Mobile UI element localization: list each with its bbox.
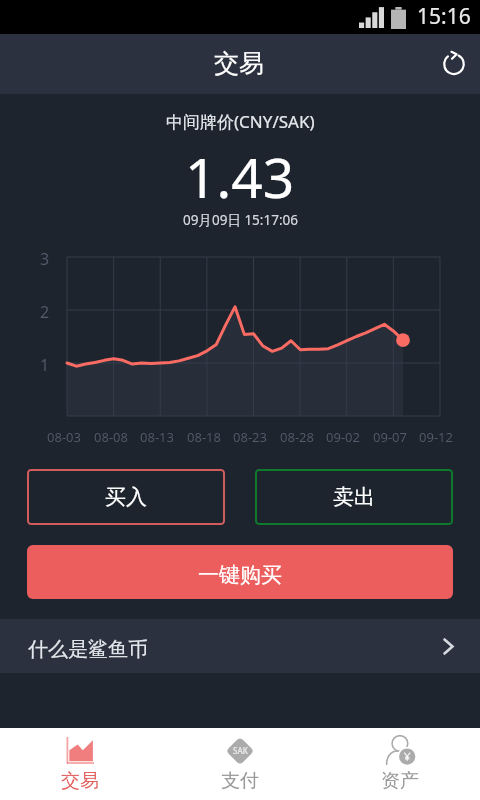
button[interactable]: 卖出 — [255, 469, 453, 525]
staticText: 15:16 — [417, 2, 471, 31]
staticText: 09-07 — [365, 428, 415, 446]
button[interactable]: 买入 — [27, 469, 225, 525]
staticText: 中间牌价(CNY/SAK) — [166, 110, 315, 133]
button[interactable]: Refresh — [426, 36, 480, 92]
staticText: 交易 — [61, 769, 99, 793]
staticText: 08-18 — [179, 428, 229, 446]
staticText: 2 — [40, 301, 50, 323]
button[interactable]: 什么是鲨鱼币 — [0, 619, 480, 673]
button[interactable]: 资产 — [320, 728, 480, 800]
staticText: 1.43 — [185, 139, 295, 214]
staticText: 资产 — [381, 769, 419, 793]
staticText: 一键购买 — [198, 562, 282, 588]
staticText: 交易 — [214, 48, 264, 79]
staticText: 08-08 — [86, 428, 136, 446]
staticText: 09-02 — [318, 428, 368, 446]
staticText: 什么是鲨鱼币 — [28, 637, 148, 662]
staticText: 买入 — [105, 484, 147, 510]
staticText: 卖出 — [333, 484, 375, 510]
button[interactable]: 交易 — [0, 728, 160, 800]
staticText: 3 — [40, 248, 50, 270]
staticText: 1 — [40, 354, 50, 376]
staticText: 08-03 — [39, 428, 89, 446]
staticText: 09月09日 15:17:06 — [183, 211, 298, 229]
staticText: 08-28 — [272, 428, 322, 446]
button[interactable]: 一键购买 — [27, 545, 453, 599]
staticText: 08-13 — [132, 428, 182, 446]
staticText: SAK — [233, 745, 248, 756]
staticText: 支付 — [221, 769, 259, 793]
staticText: 09-12 — [411, 428, 461, 446]
button[interactable]: SAK — [160, 728, 320, 800]
staticText: 08-23 — [225, 428, 275, 446]
